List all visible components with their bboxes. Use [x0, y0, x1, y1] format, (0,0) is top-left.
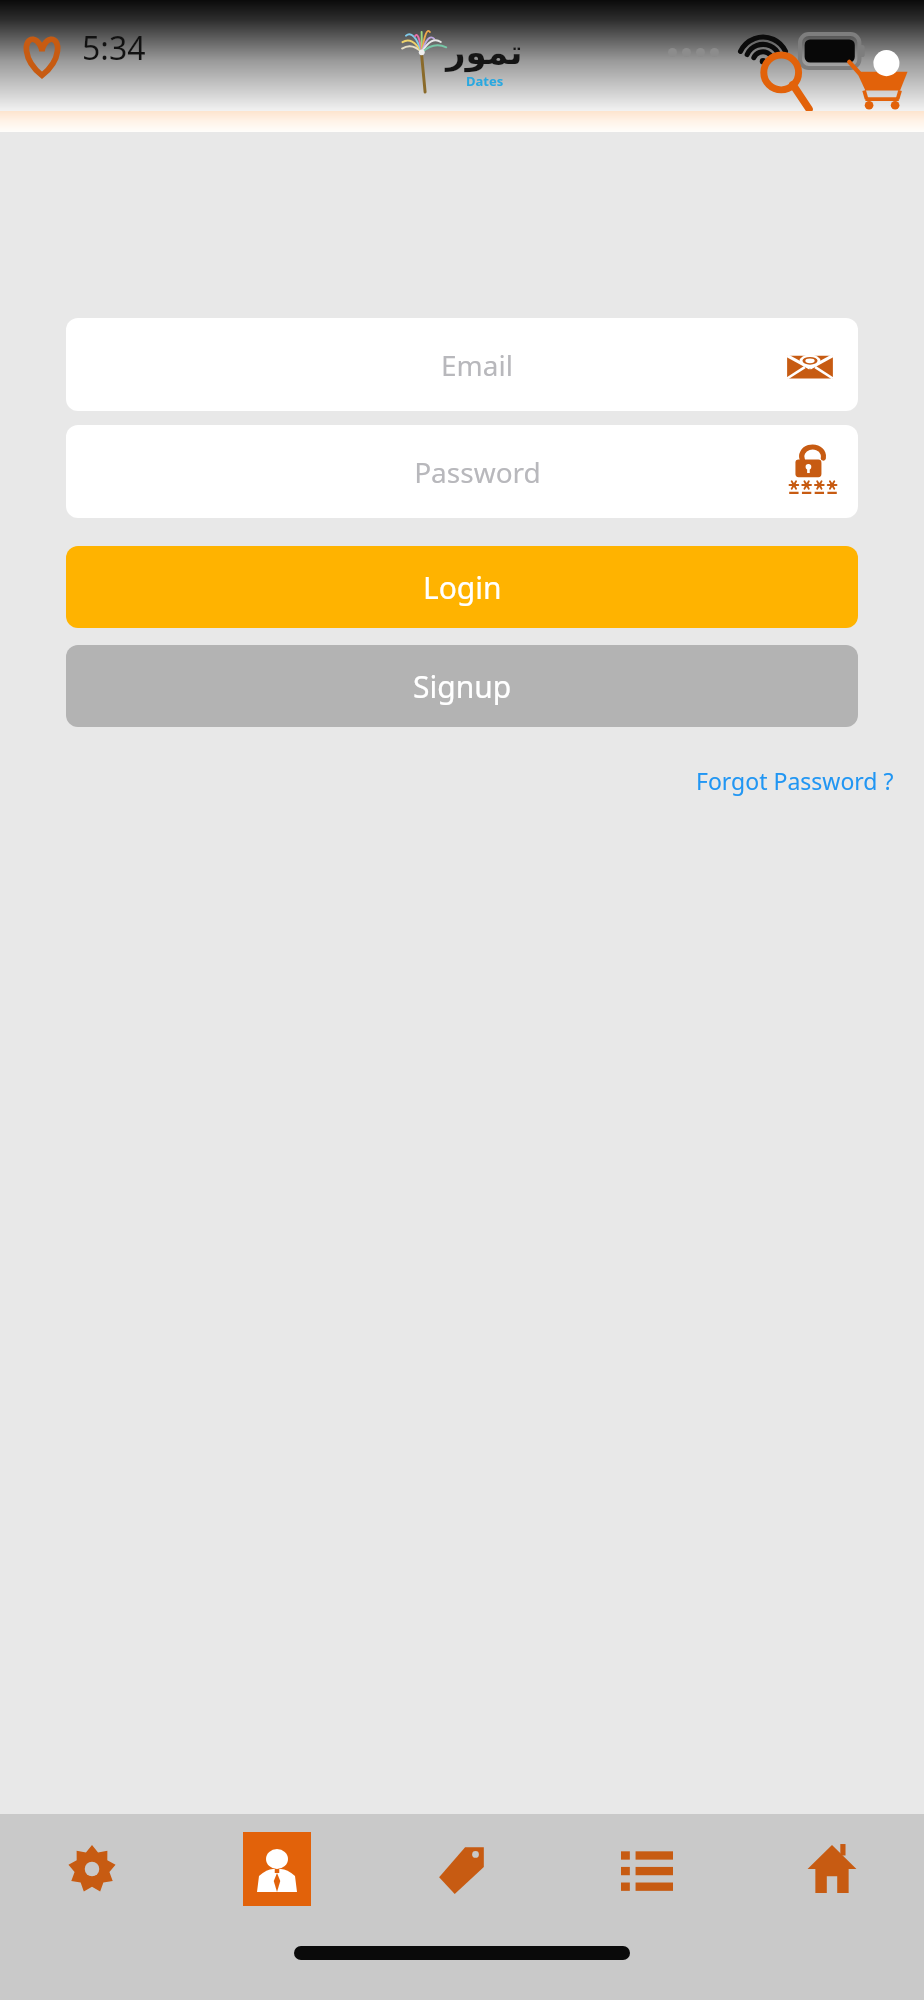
- button[interactable]: تمور: [402, 30, 523, 92]
- button[interactable]: Categories: [554, 1814, 739, 1924]
- staticText: تمور: [446, 32, 523, 72]
- staticText: Email: [441, 346, 513, 384]
- button[interactable]: Settings: [0, 1814, 184, 1924]
- button[interactable]: Offers: [369, 1814, 554, 1924]
- button[interactable]: Password: [66, 425, 858, 518]
- staticText: Login: [423, 567, 502, 608]
- staticText: Signup: [413, 666, 512, 707]
- staticText: 5:34: [82, 26, 146, 70]
- staticText: Dates: [466, 72, 504, 90]
- button[interactable]: Home: [739, 1814, 924, 1924]
- staticText: Forgot Password ?: [696, 765, 894, 796]
- button[interactable]: Account: [184, 1814, 369, 1924]
- button[interactable]: Cart: [848, 47, 910, 109]
- button[interactable]: Signup: [66, 645, 858, 727]
- staticText: Password: [414, 453, 541, 491]
- button[interactable]: Forgot Password ?: [692, 759, 898, 802]
- button[interactable]: Login: [66, 546, 858, 628]
- button[interactable]: Favourites: [14, 28, 70, 84]
- button[interactable]: Email: [66, 318, 858, 411]
- button[interactable]: Search: [758, 51, 816, 109]
